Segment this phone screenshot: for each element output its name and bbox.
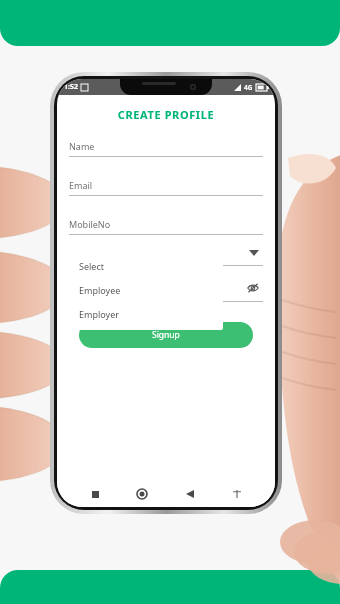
other: Show password (247, 282, 259, 294)
button[interactable]: Keyboard (227, 484, 247, 504)
staticText: 4G (244, 83, 253, 92)
button[interactable]: Name (69, 140, 263, 157)
staticText: Employee (79, 284, 121, 296)
staticText: Email (69, 179, 93, 191)
button[interactable]: Recents (85, 484, 105, 504)
button[interactable]: Open dropdown (69, 241, 263, 265)
button[interactable]: MobileNo (69, 218, 263, 235)
button[interactable]: Home (132, 484, 152, 504)
button[interactable]: Back (180, 484, 200, 504)
staticText: Select (79, 260, 104, 272)
staticText: Signup (152, 329, 180, 341)
other: Open dropdown (249, 250, 259, 256)
staticText: CREATE PROFILE (69, 107, 263, 122)
staticText: MobileNo (69, 218, 111, 230)
staticText: Name (69, 140, 95, 152)
button[interactable]: Signup (79, 322, 253, 348)
button[interactable]: Select (67, 254, 223, 278)
button[interactable]: Show password (69, 278, 263, 298)
staticText: Employer (79, 308, 119, 320)
button[interactable]: Email (69, 179, 263, 196)
button[interactable]: Employee (67, 278, 223, 302)
button[interactable]: Employer (67, 302, 223, 326)
staticText: 1:52 (64, 82, 78, 92)
